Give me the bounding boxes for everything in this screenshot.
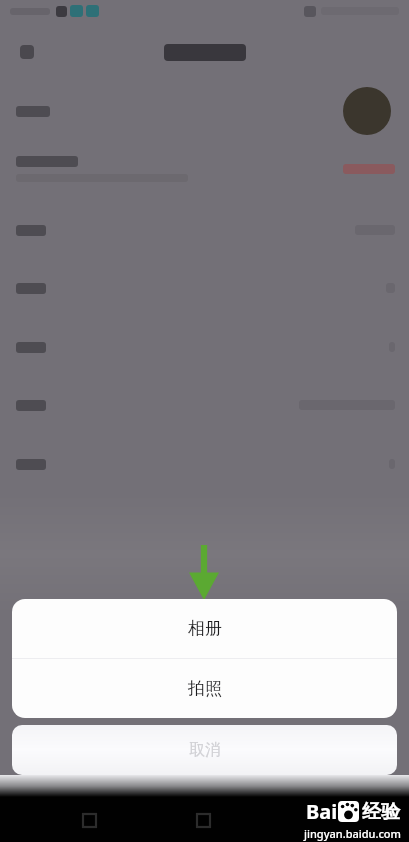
button[interactable]: Home (192, 809, 214, 831)
staticText: 经验 (362, 800, 400, 824)
staticText: jingyan.baidu.com (304, 826, 401, 841)
staticText: 相册 (188, 618, 222, 639)
button[interactable]: 相册 (12, 599, 397, 658)
staticText: 拍照 (188, 678, 222, 699)
staticText: Bai (306, 798, 338, 825)
button[interactable]: 取消 (12, 725, 397, 775)
button[interactable]: Recents (78, 809, 100, 831)
staticText: 取消 (189, 740, 221, 760)
button[interactable]: 拍照 (12, 659, 397, 718)
